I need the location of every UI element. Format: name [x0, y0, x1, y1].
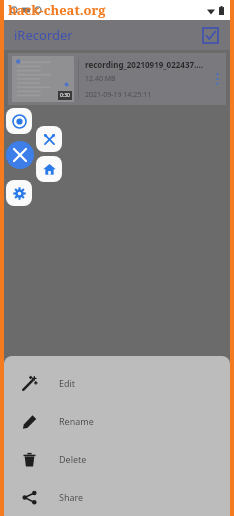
staticText: iRecorder — [14, 26, 73, 44]
staticText: Share — [59, 491, 84, 503]
button[interactable]: Settings — [6, 180, 32, 206]
staticText: 12.40 MB — [85, 74, 116, 84]
button[interactable]: 0:30 — [8, 53, 226, 105]
button[interactable]: Record — [6, 108, 32, 134]
staticText: Edit — [59, 377, 76, 389]
button[interactable]: Share — [4, 478, 230, 516]
staticText: recording_20210919_022437.mp4 — [85, 59, 208, 70]
staticText: hack-cheat.org — [8, 1, 106, 19]
button[interactable]: Delete — [4, 440, 230, 478]
button[interactable]: Close menu — [6, 141, 34, 169]
button[interactable]: More options — [208, 53, 226, 105]
staticText: Rename — [59, 415, 94, 427]
button[interactable]: Tools — [36, 126, 62, 152]
button[interactable]: Home — [36, 156, 62, 182]
staticText: Delete — [59, 453, 87, 465]
button[interactable]: Edit — [4, 364, 230, 402]
staticText: 0:30 — [60, 92, 70, 99]
staticText: 2021-09-19 14:25:11 — [85, 90, 152, 100]
button[interactable]: Select recordings — [198, 23, 222, 47]
button[interactable]: Rename — [4, 402, 230, 440]
